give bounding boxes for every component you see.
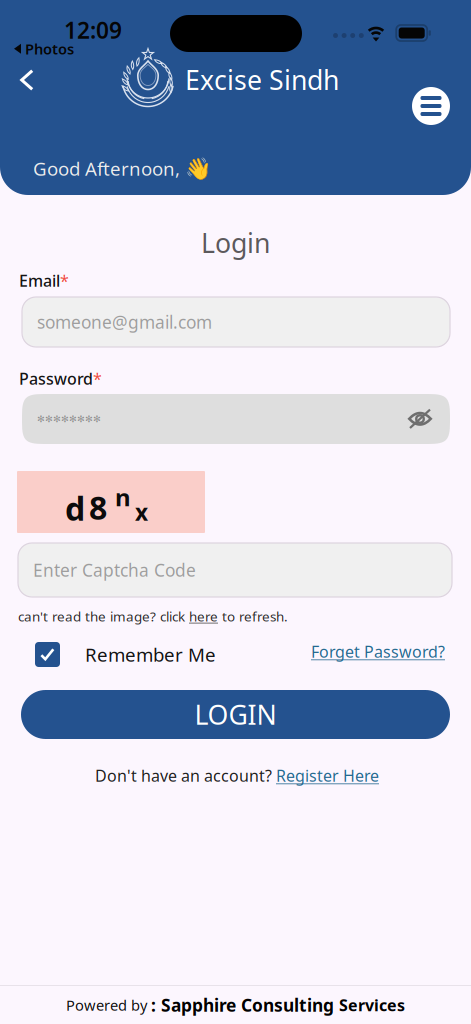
staticText: Don't have an account? bbox=[95, 765, 276, 786]
button[interactable]: Back to Photos bbox=[14, 39, 74, 58]
button[interactable]: Refresh captcha bbox=[18, 607, 418, 625]
button[interactable]: Menu bbox=[412, 87, 450, 125]
staticText: x bbox=[135, 497, 148, 527]
staticText: * bbox=[60, 270, 69, 291]
staticText: 8 bbox=[89, 486, 107, 528]
staticText: n bbox=[115, 481, 131, 513]
staticText: Login bbox=[201, 225, 270, 260]
button[interactable]: Remember Me bbox=[35, 642, 216, 667]
staticText: Photos bbox=[25, 39, 74, 58]
staticText: Remember Me bbox=[85, 642, 216, 667]
button[interactable]: Back bbox=[12, 65, 42, 95]
staticText: Enter Captcha Code bbox=[33, 558, 196, 581]
button[interactable]: LOGIN bbox=[21, 690, 450, 739]
staticText: 👋 bbox=[185, 156, 212, 181]
staticText: * bbox=[93, 368, 102, 389]
button[interactable]: Forget Password? bbox=[311, 641, 445, 662]
button[interactable]: Register Here bbox=[276, 765, 379, 786]
staticText: someone@gmail.com bbox=[37, 310, 212, 333]
staticText: d bbox=[65, 487, 85, 529]
staticText: : Sapphire Consulting bbox=[151, 993, 339, 1016]
staticText: Good Afternoon, bbox=[33, 156, 180, 181]
staticText: Password bbox=[19, 368, 93, 389]
staticText: Powered by bbox=[66, 995, 151, 1015]
staticText: ✻✻✻✻✻✻✻✻ bbox=[37, 414, 101, 424]
staticText: 12:09 bbox=[64, 15, 122, 45]
staticText: Register Here bbox=[276, 765, 379, 786]
staticText: Forget Password? bbox=[311, 641, 445, 662]
button[interactable]: Show password bbox=[407, 408, 433, 430]
staticText: Email bbox=[19, 270, 60, 291]
staticText: can't read the image? click here to refr… bbox=[18, 607, 288, 625]
staticText: LOGIN bbox=[194, 697, 276, 732]
staticText: Services bbox=[339, 994, 405, 1016]
staticText: Excise Sindh bbox=[185, 62, 339, 97]
